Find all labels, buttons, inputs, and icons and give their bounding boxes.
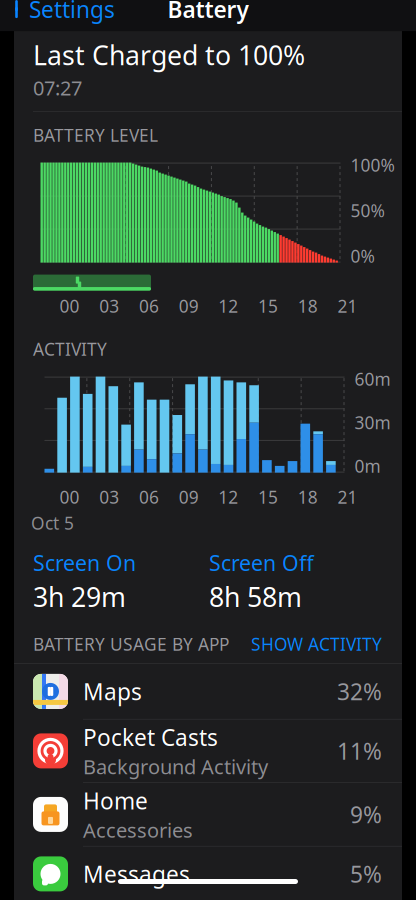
staticText: ACTIVITY xyxy=(33,338,107,361)
staticText: 50% xyxy=(350,199,384,222)
staticText: 0% xyxy=(350,245,374,268)
staticText: 32% xyxy=(337,676,382,706)
button[interactable]: SHOW ACTIVITY xyxy=(251,632,382,655)
button[interactable]: Maps xyxy=(14,664,402,719)
staticText: BATTERY USAGE BY APP xyxy=(33,632,229,655)
staticText: 00 xyxy=(59,486,79,509)
button[interactable]: Messages xyxy=(14,846,402,900)
staticText: Messages xyxy=(83,859,190,889)
staticText: Oct 5 xyxy=(31,512,74,535)
staticText: 3h 29m xyxy=(33,579,126,614)
staticText: 11% xyxy=(337,736,382,766)
staticText: Home xyxy=(83,786,148,816)
staticText: 5% xyxy=(350,859,382,889)
staticText: 21 xyxy=(337,486,357,509)
staticText: 07:27 xyxy=(33,74,82,101)
staticText: 03 xyxy=(99,295,119,318)
staticText: SHOW ACTIVITY xyxy=(251,632,382,655)
staticText: 0m xyxy=(354,455,380,478)
staticText: Accessories xyxy=(83,817,193,843)
button[interactable]: Pocket Casts xyxy=(14,719,402,783)
button[interactable]: Settings xyxy=(10,0,117,30)
staticText: 03 xyxy=(99,486,119,509)
staticText: 18 xyxy=(298,295,318,318)
staticText: 30m xyxy=(354,411,390,434)
staticText: 06 xyxy=(139,486,159,509)
staticText: Pocket Casts xyxy=(83,722,218,752)
staticText: Battery xyxy=(167,0,248,24)
staticText: 100% xyxy=(350,154,394,177)
staticText: 15 xyxy=(258,295,278,318)
staticText: 06 xyxy=(139,295,159,318)
staticText: 9% xyxy=(350,799,382,829)
staticText: BATTERY LEVEL xyxy=(33,124,158,147)
staticText: 15 xyxy=(258,486,278,509)
staticText: Screen Off xyxy=(209,549,314,577)
staticText: Maps xyxy=(83,676,142,706)
staticText: 60m xyxy=(354,368,390,391)
staticText: 09 xyxy=(179,295,199,318)
staticText: Last Charged to 100% xyxy=(33,37,305,72)
staticText: Screen On xyxy=(33,549,136,577)
staticText: 18 xyxy=(298,486,318,509)
staticText: Settings xyxy=(29,0,115,24)
staticText: 8h 58m xyxy=(209,579,302,614)
staticText: 00 xyxy=(59,295,79,318)
staticText: 09 xyxy=(179,486,199,509)
button[interactable]: Home xyxy=(14,783,402,846)
staticText: 21 xyxy=(337,295,357,318)
staticText: 12 xyxy=(218,295,238,318)
staticText: 12 xyxy=(218,486,238,509)
staticText: Background Activity xyxy=(83,753,268,780)
